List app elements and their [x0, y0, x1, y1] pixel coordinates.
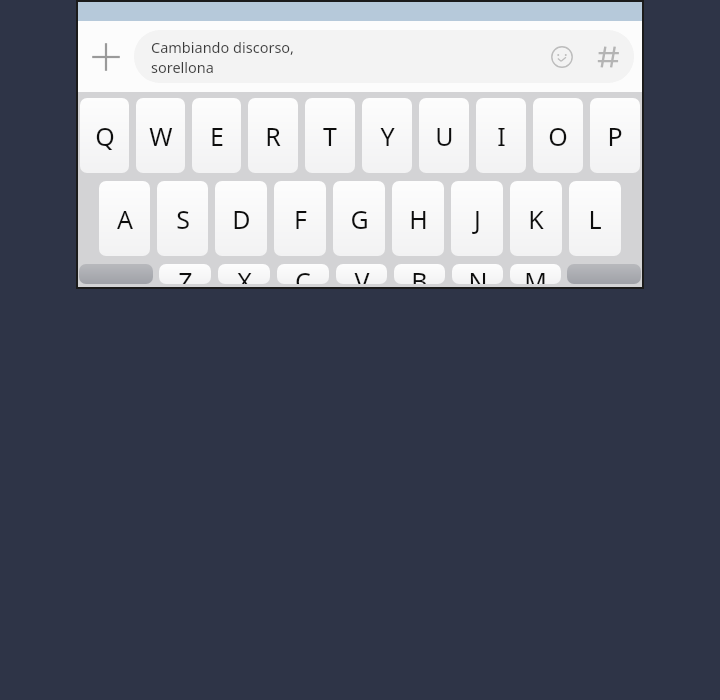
button[interactable]: V — [336, 264, 387, 284]
staticText: S — [176, 202, 190, 236]
button[interactable]: X — [218, 264, 270, 284]
button[interactable]: J — [451, 181, 503, 256]
staticText: Cambiando discorso, — [151, 37, 294, 57]
staticText: Z — [178, 264, 193, 284]
staticText: sorellona — [151, 57, 214, 77]
staticText: F — [294, 202, 307, 236]
button[interactable]: Emoji — [540, 35, 584, 79]
staticText: T — [323, 119, 337, 153]
staticText: N — [468, 264, 488, 284]
staticText: H — [409, 202, 428, 236]
staticText: J — [474, 202, 481, 236]
button[interactable]: E — [192, 98, 241, 173]
staticText: G — [350, 202, 369, 236]
staticText: W — [149, 119, 173, 153]
button[interactable]: Add attachment — [78, 21, 134, 92]
button[interactable]: K — [510, 181, 562, 256]
button[interactable]: Z — [159, 264, 211, 284]
button[interactable]: S — [157, 181, 208, 256]
button[interactable]: W — [136, 98, 185, 173]
button[interactable]: B — [394, 264, 445, 284]
button[interactable]: Hashtag — [584, 32, 634, 82]
button[interactable]: H — [392, 181, 444, 256]
button[interactable]: U — [419, 98, 469, 173]
button[interactable]: N — [452, 264, 503, 284]
staticText: A — [117, 202, 133, 236]
button[interactable]: I — [476, 98, 526, 173]
staticText: D — [232, 202, 251, 236]
button[interactable]: Q — [80, 98, 129, 173]
staticText: P — [607, 119, 623, 153]
button[interactable]: A — [99, 181, 150, 256]
button[interactable]: D — [215, 181, 267, 256]
staticText: R — [265, 119, 281, 153]
button[interactable]: P — [590, 98, 640, 173]
button[interactable]: Cambiando discorso, — [134, 30, 634, 83]
staticText: Y — [380, 119, 395, 153]
staticText: B — [411, 264, 428, 284]
staticText: E — [210, 119, 224, 153]
staticText: L — [588, 202, 602, 236]
button[interactable]: T — [305, 98, 355, 173]
button[interactable]: F — [274, 181, 326, 256]
staticText: C — [295, 264, 311, 284]
staticText: M — [524, 264, 547, 284]
staticText: U — [435, 119, 454, 153]
button[interactable]: R — [248, 98, 298, 173]
button[interactable]: L — [569, 181, 621, 256]
button[interactable]: Backspace — [567, 264, 641, 284]
staticText: Q — [95, 119, 115, 153]
button[interactable]: C — [277, 264, 329, 284]
button[interactable]: Y — [362, 98, 412, 173]
button[interactable]: O — [533, 98, 583, 173]
button[interactable]: M — [510, 264, 561, 284]
staticText: I — [497, 119, 506, 153]
button[interactable]: Shift — [79, 264, 153, 284]
staticText: X — [237, 264, 252, 284]
staticText: V — [354, 264, 370, 284]
button[interactable]: G — [333, 181, 385, 256]
staticText: O — [548, 119, 568, 153]
staticText: K — [528, 202, 544, 236]
